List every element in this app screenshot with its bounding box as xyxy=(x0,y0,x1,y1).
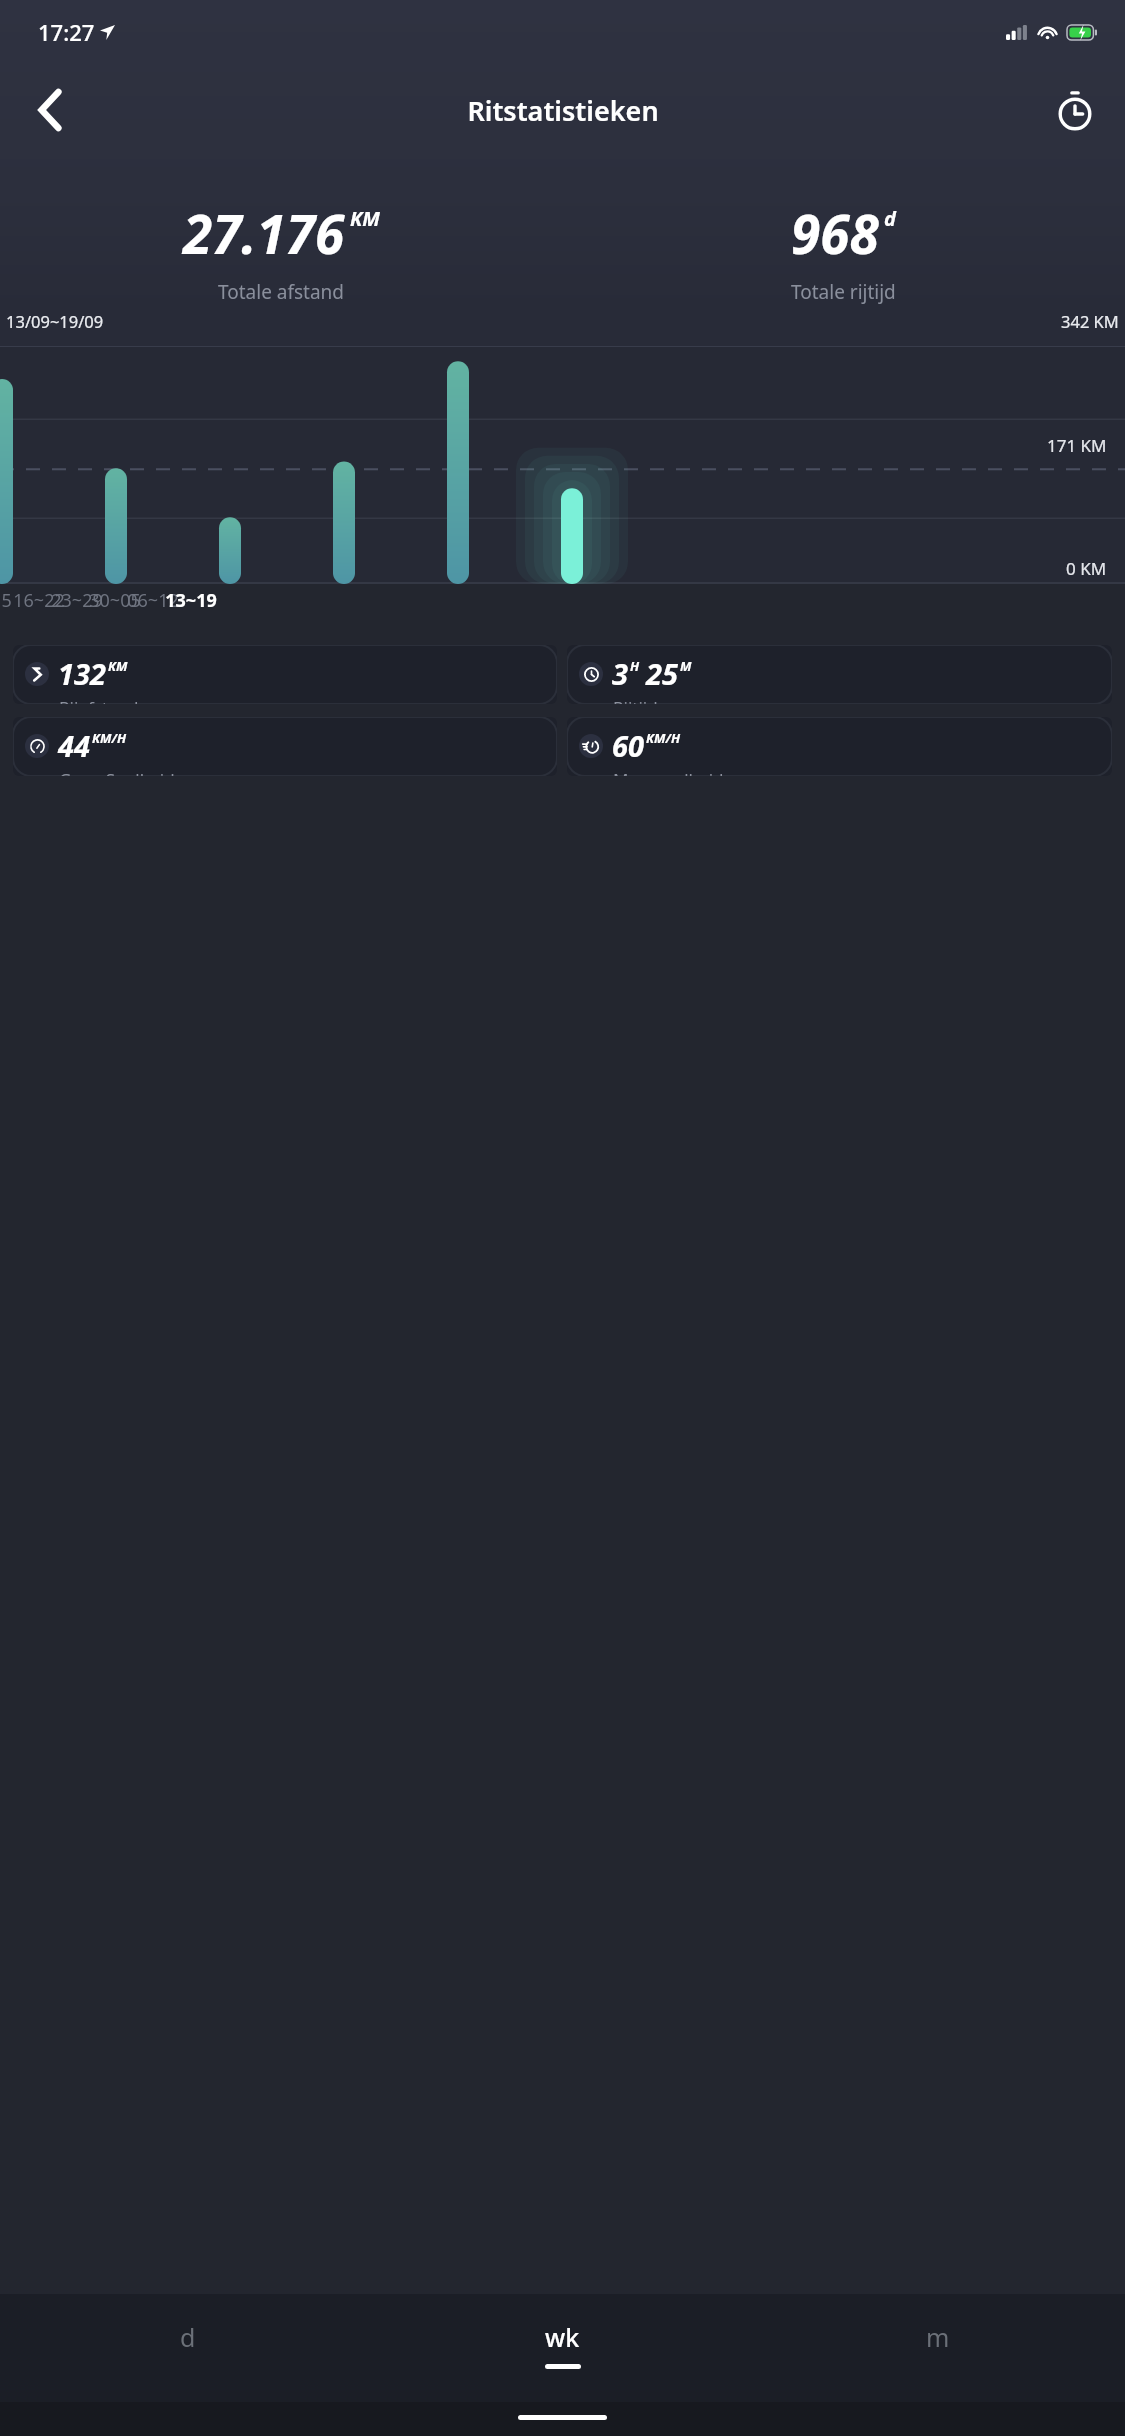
staticText: Gem. Snelheid xyxy=(59,768,175,776)
button[interactable]: 44 xyxy=(13,717,557,776)
staticText: 30~05 xyxy=(89,588,141,613)
button[interactable]: m xyxy=(750,2294,1125,2402)
staticText: 27.176 xyxy=(183,197,345,269)
staticText: m xyxy=(926,2320,950,2354)
button[interactable]: 132 xyxy=(13,645,557,704)
button[interactable]: d xyxy=(0,2294,375,2402)
staticText: KM/H xyxy=(92,729,127,747)
staticText: 23~29 xyxy=(51,588,103,613)
staticText: wk xyxy=(545,2320,580,2354)
staticText: KM xyxy=(108,657,128,675)
staticText: H xyxy=(630,657,640,675)
button[interactable]: Stopwatch xyxy=(1047,82,1103,138)
staticText: 60 xyxy=(612,726,644,765)
staticText: 0 KM xyxy=(1066,557,1107,580)
staticText: Rijtijd xyxy=(613,696,658,704)
staticText: 132 xyxy=(58,654,106,693)
staticText: KM xyxy=(350,205,380,232)
staticText: Totale rijtijd xyxy=(791,279,896,305)
staticText: KM/H xyxy=(646,729,681,747)
button[interactable]: 60 xyxy=(567,717,1112,776)
button[interactable]: Back xyxy=(22,82,78,138)
staticText: 15 xyxy=(0,588,12,613)
button[interactable]: wk xyxy=(375,2294,750,2402)
staticText: 13~19 xyxy=(165,588,217,613)
staticText: 17:27 xyxy=(38,17,95,47)
staticText: Ritstatistieken xyxy=(467,92,659,129)
staticText: Totale afstand xyxy=(218,279,345,305)
staticText: 44 xyxy=(58,726,90,765)
staticText: 16~22 xyxy=(13,588,65,613)
button[interactable]: 3 xyxy=(567,645,1112,704)
staticText: M xyxy=(680,657,692,675)
staticText: 25 xyxy=(646,654,678,693)
staticText: Max. snelheid xyxy=(613,768,724,776)
staticText: 06~12 xyxy=(127,588,179,613)
staticText: Rijafstand xyxy=(59,696,139,704)
staticText: 968 xyxy=(791,197,879,269)
staticText: 3 xyxy=(612,654,628,693)
staticText: 171 KM xyxy=(1047,434,1107,457)
staticText: d xyxy=(180,2320,196,2354)
staticText: 342 KM xyxy=(1061,310,1119,332)
staticText: 13/09~19/09 xyxy=(6,310,104,332)
staticText: d xyxy=(884,205,896,232)
